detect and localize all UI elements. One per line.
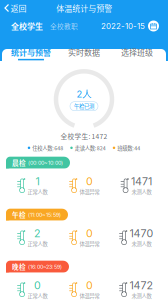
staticText: 班级数: 44 [117,144,140,152]
button[interactable]: 全校学生 [9,20,45,32]
staticText: 1 [35,175,39,188]
staticText: 正常人数 [27,292,47,299]
staticText: 选择班级 [121,46,153,58]
staticText: 体温异常 [79,292,99,299]
staticText: 午检已测 [74,102,94,110]
staticText: 0 [86,279,93,292]
button[interactable]: 全校教职 [45,21,83,31]
staticText: 0 [34,279,41,292]
staticText: 未测人数 [131,240,151,247]
staticText: 未测人数 [131,292,151,299]
staticText: 1471 [131,175,152,188]
staticText: 2022-10-15 [101,21,145,31]
staticText: 2人 [76,88,91,100]
staticText: 0 [86,175,93,188]
button[interactable]: 2022-10-15 [101,20,159,31]
staticText: 正常人数 [27,240,47,247]
staticText: 午检 [12,210,26,220]
staticText: 体温异常 [79,188,99,195]
staticText: (16:00~23:59) [28,263,62,270]
button[interactable]: 返回 [0,0,30,16]
staticText: 住校人数: 648 [32,144,63,152]
staticText: 1472 [129,279,153,292]
button[interactable]: 实时数据 [57,43,110,63]
staticText: 全校学生: 1472 [60,131,107,141]
staticText: 体温异常 [79,240,99,247]
staticText: 正常人数 [27,188,47,195]
staticText: 返回 [10,2,26,14]
staticText: (11:00~15:59) [28,211,61,218]
staticText: (00:00~10:00) [28,159,63,166]
staticText: 统计与预警 [11,46,51,58]
staticText: 晨检 [12,158,26,168]
staticText: 未测人数 [131,188,151,195]
button[interactable]: 选择班级 [110,43,163,63]
staticText: 晚检 [12,262,26,272]
staticText: 走读人数: 824 [75,144,106,152]
staticText: 2 [34,227,41,240]
staticText: 全校学生 [11,20,43,32]
staticText: 实时数据 [68,46,100,58]
button[interactable]: 统计与预警 [4,43,57,63]
staticText: 1470 [129,227,153,240]
staticText: 0 [86,227,93,240]
staticText: 全校教职 [50,21,78,31]
staticText: 体温统计与预警 [56,2,112,14]
